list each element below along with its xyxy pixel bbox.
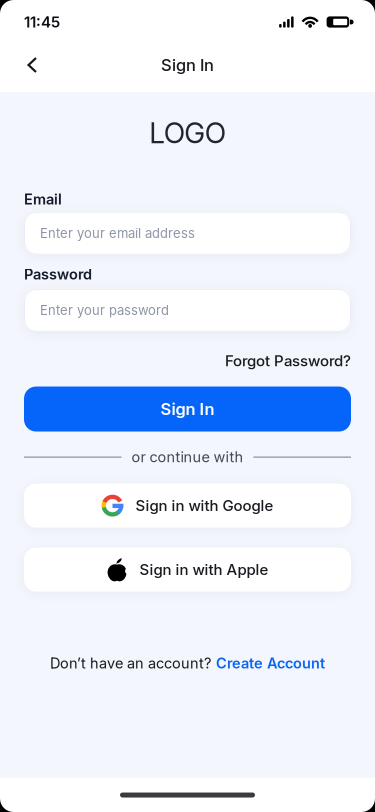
- staticText: Enter your password: [40, 303, 169, 318]
- staticText: Sign in with Apple: [139, 561, 268, 578]
- staticText: Don’t have an account?: [50, 655, 211, 672]
- staticText: Password: [24, 266, 92, 283]
- staticText: Sign In: [160, 399, 214, 419]
- button[interactable]: Sign in with Google: [24, 484, 351, 528]
- button[interactable]: Sign In: [24, 386, 351, 431]
- staticText: Email: [24, 191, 62, 208]
- staticText: Sign In: [161, 55, 214, 75]
- staticText: LOGO: [150, 116, 225, 150]
- button[interactable]: Create Account: [216, 655, 325, 672]
- button[interactable]: Back: [0, 45, 38, 85]
- staticText: Create Account: [216, 655, 325, 672]
- staticText: 11:45: [24, 13, 60, 31]
- staticText: or continue with: [131, 448, 243, 466]
- staticText: Forgot Password?: [225, 352, 351, 369]
- button[interactable]: Forgot Password?: [225, 352, 351, 369]
- button[interactable]: Sign in with Apple: [24, 548, 351, 592]
- staticText: Sign in with Google: [135, 497, 273, 514]
- staticText: Enter your email address: [40, 226, 195, 241]
